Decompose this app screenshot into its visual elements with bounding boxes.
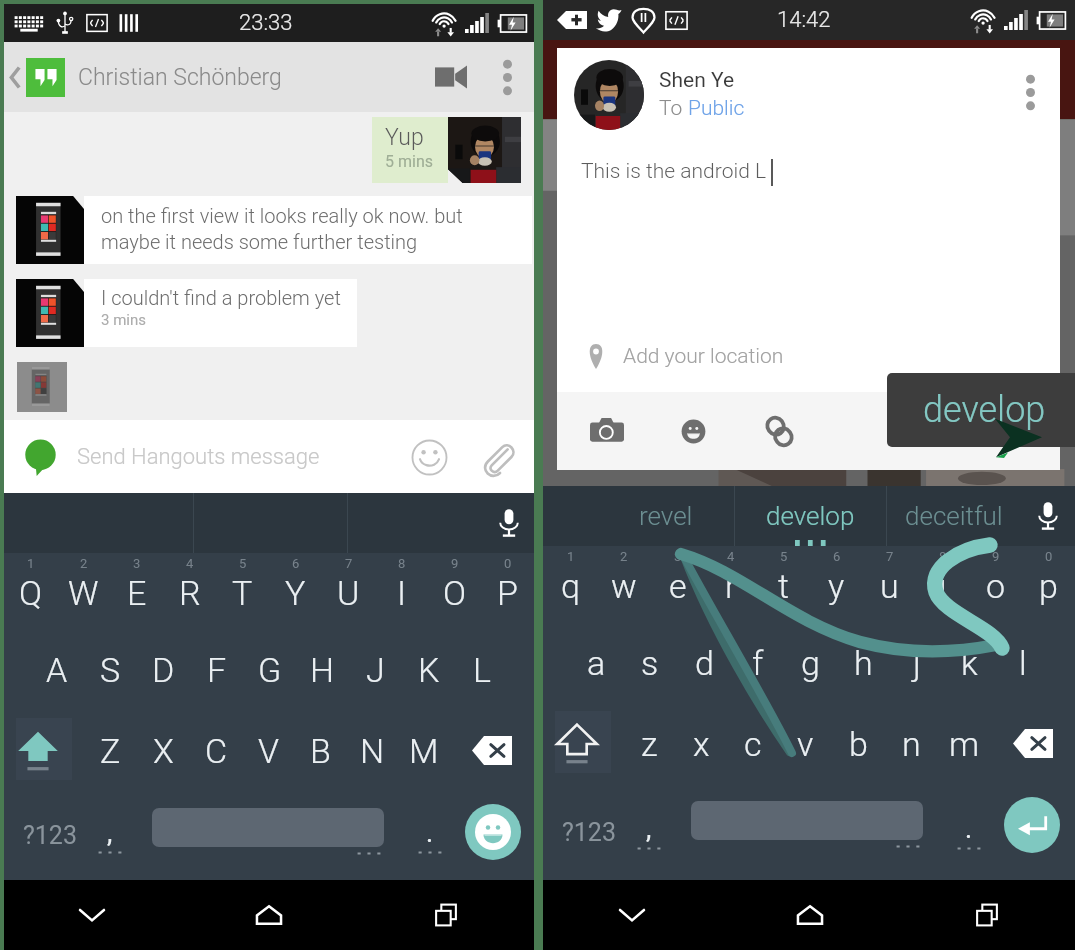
button[interactable]: D (137, 629, 190, 710)
button[interactable]: s (623, 622, 677, 703)
button[interactable]: 8 (916, 546, 969, 622)
button[interactable]: B (294, 710, 346, 791)
staticText: q (561, 566, 580, 606)
staticText: 5 (780, 549, 788, 564)
button[interactable]: 1 (4, 553, 57, 629)
button[interactable]: 6 (810, 546, 863, 622)
button[interactable]: Shift (4, 710, 84, 791)
button[interactable]: Backspace (450, 710, 534, 791)
button[interactable]: Link (753, 405, 805, 457)
button[interactable]: v (779, 703, 832, 784)
button[interactable]: Add your location (557, 330, 1060, 382)
button[interactable]: deceitful (887, 486, 1021, 546)
button[interactable]: Enter (1004, 797, 1060, 853)
button[interactable]: g (784, 622, 837, 703)
button[interactable]: 0 (1022, 546, 1075, 622)
button[interactable]: j (890, 622, 943, 703)
button[interactable]: . (945, 784, 993, 880)
button[interactable]: N (346, 710, 398, 791)
button[interactable]: , (625, 784, 673, 880)
staticText: 0 (504, 556, 512, 571)
button[interactable]: . (406, 791, 454, 880)
button[interactable]: 5 (216, 553, 269, 629)
button[interactable]: 5 (757, 546, 810, 622)
button[interactable]: F (190, 629, 243, 710)
staticText: p (1039, 566, 1058, 606)
button[interactable]: Attach (470, 430, 524, 484)
button[interactable]: 9 (428, 553, 481, 629)
button[interactable]: Voice input (1021, 486, 1075, 546)
button[interactable]: 3 (651, 546, 704, 622)
button[interactable]: d (677, 622, 731, 703)
button[interactable]: X (137, 710, 190, 791)
button[interactable]: x (675, 703, 727, 784)
button[interactable]: V (242, 710, 294, 791)
button[interactable]: Back (4, 880, 180, 950)
button[interactable]: c (727, 703, 779, 784)
button[interactable]: 8 (375, 553, 428, 629)
button[interactable]: 4 (704, 546, 757, 622)
button[interactable]: K (402, 629, 455, 710)
button[interactable]: Voice input (482, 493, 536, 553)
button[interactable]: z (623, 703, 675, 784)
button[interactable]: C (190, 710, 242, 791)
button[interactable]: Back (543, 880, 721, 950)
button[interactable]: n (885, 703, 938, 784)
button[interactable]: L (455, 629, 508, 710)
button[interactable]: Home (180, 880, 357, 950)
button[interactable]: A (30, 629, 84, 710)
button[interactable]: Switch to SMS (23, 438, 61, 476)
button[interactable]: develop (735, 486, 886, 546)
button[interactable]: S (84, 629, 137, 710)
button[interactable]: Shift (543, 703, 623, 784)
button[interactable]: Z (84, 710, 137, 791)
button[interactable]: Video call (422, 42, 480, 112)
button[interactable]: Yup (372, 117, 521, 183)
staticText: u (880, 566, 899, 606)
button[interactable]: I couldn't find a problem yet (16, 279, 357, 347)
button[interactable]: f (731, 622, 784, 703)
button[interactable]: k (943, 622, 996, 703)
button[interactable]: Recents (898, 880, 1075, 950)
button[interactable]: More options (480, 42, 534, 112)
button[interactable]: Recents (357, 880, 534, 950)
button[interactable]: H (296, 629, 349, 710)
button[interactable]: 9 (969, 546, 1022, 622)
button[interactable]: Photo (17, 362, 67, 412)
button[interactable]: ?123 (543, 784, 635, 880)
button[interactable]: Back (4, 42, 26, 112)
button[interactable]: Home (721, 880, 898, 950)
button[interactable]: Backspace (991, 703, 1075, 784)
button[interactable]: , (86, 791, 134, 880)
button[interactable]: 2 (597, 546, 651, 622)
button[interactable]: l (996, 622, 1049, 703)
button[interactable]: 7 (322, 553, 375, 629)
button[interactable]: 1 (543, 546, 597, 622)
button[interactable]: G (243, 629, 296, 710)
button[interactable]: This is the android L (557, 159, 1060, 186)
button[interactable]: J (349, 629, 402, 710)
button[interactable]: a (569, 622, 623, 703)
button[interactable]: revel (543, 486, 734, 546)
button[interactable]: Emoji (667, 405, 719, 457)
button[interactable]: 7 (863, 546, 916, 622)
staticText: To (659, 96, 688, 121)
button[interactable]: Emoji (465, 804, 521, 860)
button[interactable]: 4 (163, 553, 216, 629)
button[interactable]: 0 (481, 553, 534, 629)
button[interactable]: b (832, 703, 885, 784)
button[interactable]: m (938, 703, 991, 784)
button[interactable]: h (837, 622, 890, 703)
button[interactable]: ?123 (4, 791, 96, 880)
button[interactable]: 6 (269, 553, 322, 629)
button[interactable]: on the first view it looks really ok now… (16, 196, 532, 264)
button[interactable]: Emoji (402, 430, 456, 484)
button[interactable]: 3 (110, 553, 163, 629)
button[interactable]: 2 (57, 553, 110, 629)
button[interactable]: To (659, 96, 745, 121)
button[interactable]: M (398, 710, 450, 791)
button[interactable]: Camera (581, 405, 633, 457)
button[interactable]: More options (1006, 68, 1054, 116)
